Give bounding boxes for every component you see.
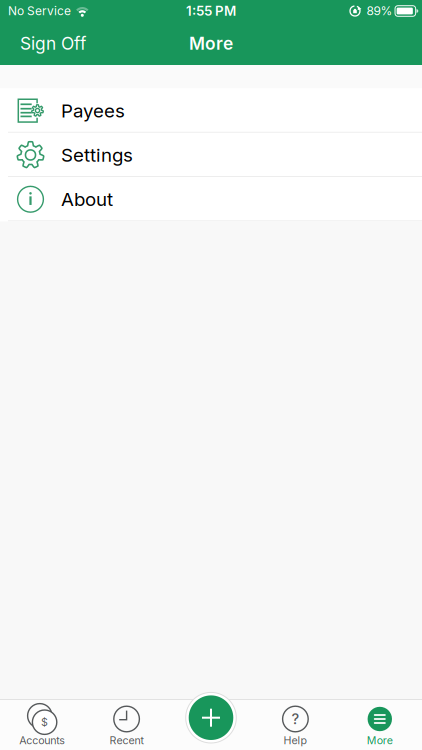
- staticText: Help: [283, 734, 307, 747]
- staticText: About: [61, 188, 113, 210]
- staticText: More: [189, 33, 233, 54]
- staticText: Accounts: [19, 734, 65, 747]
- button[interactable]: Sign Off: [20, 33, 86, 54]
- staticText: $: [41, 716, 48, 728]
- staticText: ?: [291, 710, 299, 728]
- button[interactable]: Add: [186, 692, 236, 743]
- button[interactable]: Payees: [0, 88, 422, 133]
- button[interactable]: $: [0, 700, 84, 750]
- button[interactable]: About: [0, 177, 422, 221]
- staticText: Settings: [61, 144, 133, 166]
- staticText: Sign Off: [20, 33, 86, 54]
- staticText: 89%: [366, 4, 392, 18]
- staticText: No Service: [8, 4, 71, 18]
- button[interactable]: ?: [253, 700, 338, 750]
- staticText: More: [367, 734, 393, 747]
- staticText: Payees: [61, 100, 125, 122]
- staticText: 1:55 PM: [186, 3, 236, 19]
- staticText: Recent: [110, 734, 144, 747]
- button[interactable]: Recent: [84, 700, 169, 750]
- button[interactable]: More: [338, 700, 422, 750]
- button[interactable]: Settings: [0, 133, 422, 177]
